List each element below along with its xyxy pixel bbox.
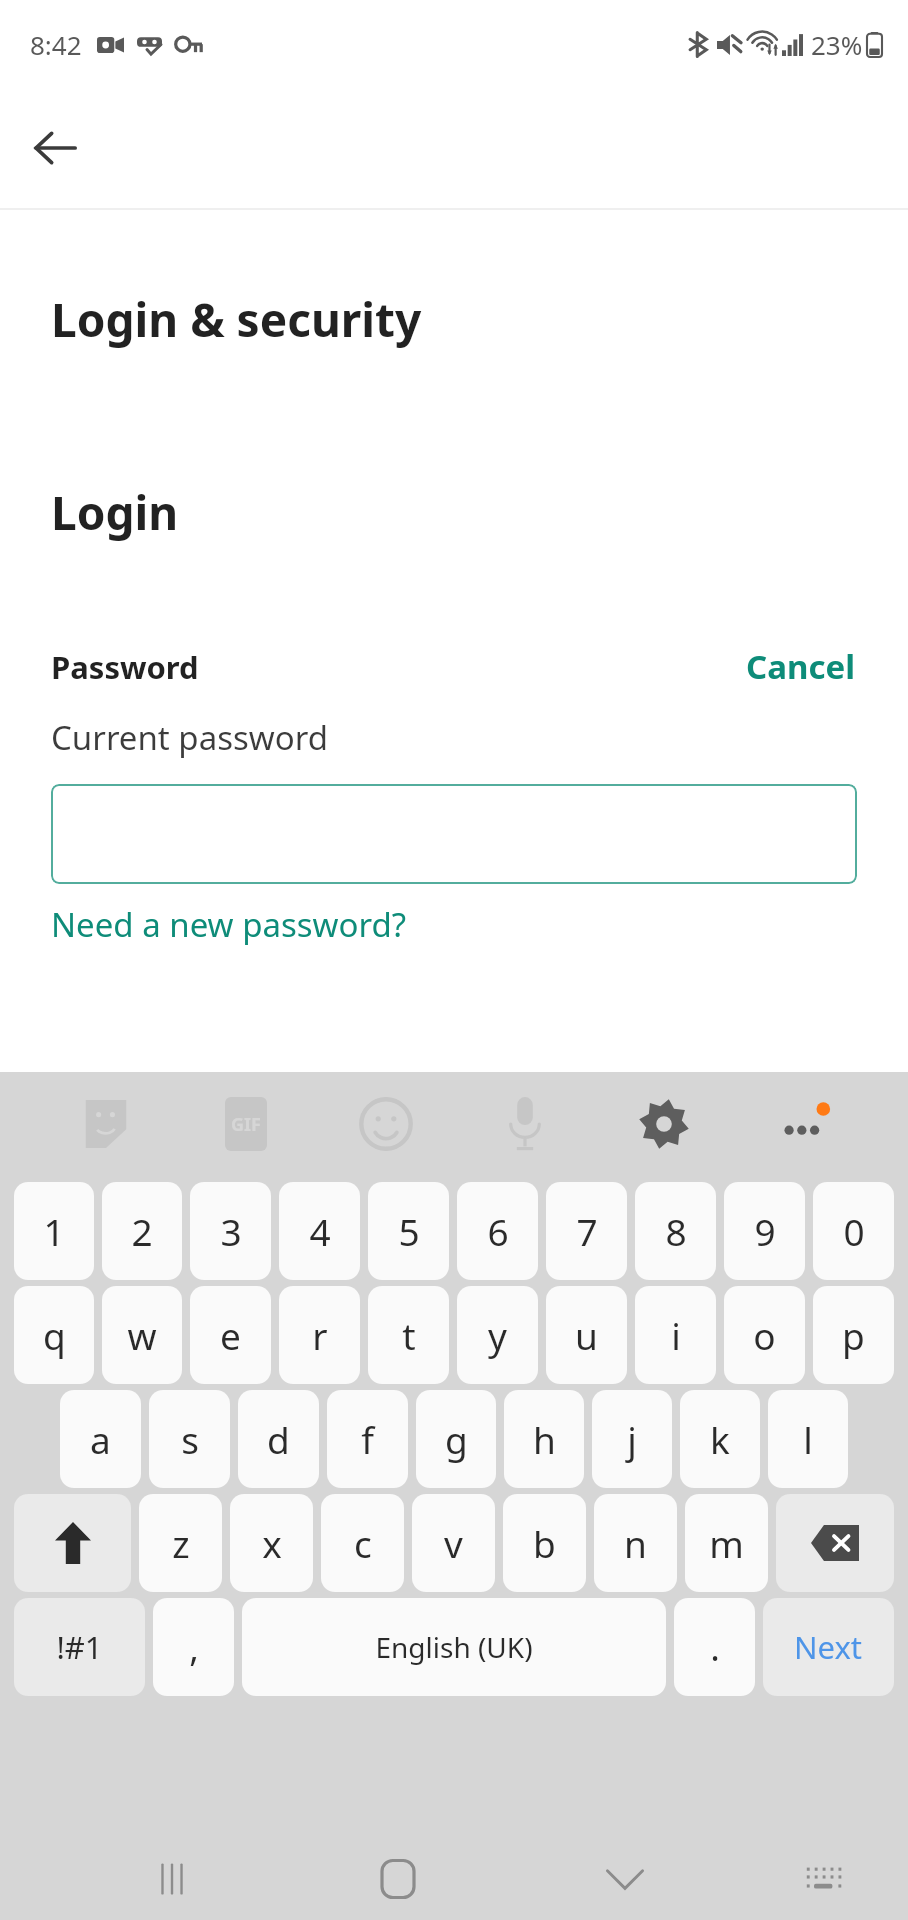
button[interactable]: y [457, 1286, 538, 1384]
button[interactable]: 4 [279, 1182, 360, 1280]
button[interactable]: Recent apps [128, 1842, 216, 1916]
button[interactable]: q [14, 1286, 94, 1384]
button[interactable]: GIF [176, 1072, 316, 1176]
button[interactable]: d [238, 1390, 319, 1488]
button[interactable]: 7 [546, 1182, 627, 1280]
button[interactable]: z [139, 1494, 222, 1592]
staticText: English (UK) [375, 1628, 533, 1666]
staticText: 23% [811, 27, 863, 62]
button[interactable]: j [592, 1390, 672, 1488]
button[interactable]: !#1 [14, 1598, 145, 1696]
staticText: Login & security [51, 288, 422, 351]
staticText: 4 [309, 1206, 331, 1256]
staticText: c [354, 1518, 372, 1568]
button[interactable]: g [416, 1390, 496, 1488]
staticText: n [624, 1518, 647, 1568]
button[interactable]: 0 [813, 1182, 894, 1280]
staticText: b [533, 1518, 556, 1568]
button[interactable]: Voice input [455, 1072, 594, 1176]
staticText: e [220, 1310, 241, 1360]
button[interactable]: p [813, 1286, 894, 1384]
staticText: d [267, 1414, 290, 1464]
button[interactable]: s [149, 1390, 230, 1488]
staticText: Current password [51, 715, 328, 760]
button[interactable]: m [685, 1494, 768, 1592]
button[interactable]: English (UK) [242, 1598, 666, 1696]
button[interactable]: u [546, 1286, 627, 1384]
button[interactable]: Emoji [316, 1072, 455, 1176]
staticText: f [361, 1414, 374, 1464]
staticText: , [189, 1623, 199, 1672]
button[interactable]: x [230, 1494, 313, 1592]
staticText: Login [51, 481, 179, 544]
button[interactable]: t [368, 1286, 449, 1384]
staticText: x [262, 1518, 282, 1568]
button[interactable]: More options [733, 1072, 872, 1176]
staticText: v [444, 1518, 463, 1568]
staticText: w [127, 1310, 157, 1360]
staticText: Next [794, 1626, 863, 1668]
staticText: 6 [487, 1206, 509, 1256]
button[interactable]: e [190, 1286, 271, 1384]
staticText: 7 [576, 1206, 598, 1256]
button[interactable]: i [635, 1286, 716, 1384]
button[interactable]: . [674, 1598, 755, 1696]
button[interactable]: Backspace [776, 1494, 894, 1592]
button[interactable]: n [594, 1494, 677, 1592]
staticText: 1 [43, 1206, 65, 1256]
button[interactable]: r [279, 1286, 360, 1384]
button[interactable]: Need a new password? [51, 902, 407, 947]
button[interactable]: , [153, 1598, 234, 1696]
button[interactable]: b [503, 1494, 586, 1592]
button[interactable]: l [768, 1390, 848, 1488]
button[interactable]: f [327, 1390, 408, 1488]
staticText: m [709, 1518, 744, 1568]
staticText: 5 [398, 1206, 420, 1256]
staticText: 3 [220, 1206, 242, 1256]
staticText: u [575, 1310, 598, 1360]
button[interactable]: Back [16, 109, 94, 187]
button[interactable]: Shift [14, 1494, 131, 1592]
staticText: r [312, 1310, 328, 1360]
button[interactable]: 8 [635, 1182, 716, 1280]
button[interactable]: c [321, 1494, 404, 1592]
staticText: h [533, 1414, 556, 1464]
button[interactable]: 3 [190, 1182, 271, 1280]
staticText: 8 [665, 1206, 687, 1256]
button[interactable]: 5 [368, 1182, 449, 1280]
staticText: 0 [843, 1206, 865, 1256]
button[interactable]: a [60, 1390, 141, 1488]
button[interactable]: Switch keyboard [780, 1842, 868, 1916]
button[interactable] [51, 784, 857, 884]
staticText: g [445, 1414, 468, 1464]
staticText: z [172, 1518, 190, 1568]
staticText: !#1 [56, 1626, 103, 1668]
button[interactable]: 2 [102, 1182, 182, 1280]
button[interactable]: Hide keyboard [581, 1842, 669, 1916]
button[interactable]: o [724, 1286, 805, 1384]
staticText: Need a new password? [51, 902, 407, 947]
button[interactable]: 6 [457, 1182, 538, 1280]
button[interactable]: Next [763, 1598, 894, 1696]
button[interactable]: k [680, 1390, 760, 1488]
button[interactable]: Home [354, 1842, 442, 1916]
staticText: 2 [131, 1206, 153, 1256]
button[interactable]: 9 [724, 1182, 805, 1280]
button[interactable]: Keyboard settings [594, 1072, 733, 1176]
button[interactable]: Stickers [36, 1072, 176, 1176]
staticText: j [627, 1414, 637, 1464]
staticText: . [710, 1623, 720, 1672]
staticText: GIF [231, 1112, 261, 1137]
staticText: t [402, 1310, 416, 1360]
button[interactable]: w [102, 1286, 182, 1384]
staticText: o [753, 1310, 776, 1360]
button[interactable]: v [412, 1494, 495, 1592]
button[interactable]: Cancel [744, 642, 857, 691]
staticText: k [710, 1414, 730, 1464]
staticText: q [43, 1310, 66, 1360]
button[interactable]: h [504, 1390, 584, 1488]
staticText: p [842, 1310, 865, 1360]
staticText: 8:42 [30, 27, 82, 62]
staticText: 9 [754, 1206, 776, 1256]
button[interactable]: 1 [14, 1182, 94, 1280]
